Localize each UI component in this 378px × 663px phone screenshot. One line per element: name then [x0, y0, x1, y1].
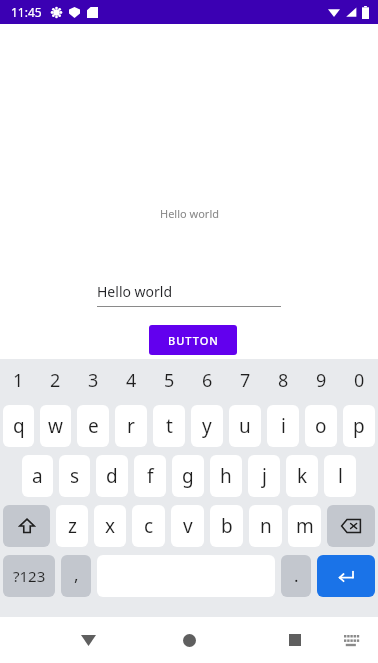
- button[interactable]: Recents: [281, 626, 309, 654]
- staticText: g: [182, 463, 194, 489]
- staticText: u: [239, 413, 251, 439]
- staticText: 5: [164, 368, 175, 393]
- staticText: 11:45: [11, 4, 42, 20]
- staticText: 6: [202, 368, 213, 393]
- staticText: s: [70, 463, 80, 489]
- button[interactable]: l: [324, 455, 356, 497]
- staticText: q: [13, 413, 25, 439]
- button[interactable]: m: [288, 505, 321, 547]
- button[interactable]: BUTTON: [149, 325, 237, 355]
- staticText: l: [338, 463, 343, 489]
- staticText: h: [220, 463, 232, 489]
- staticText: t: [166, 413, 173, 439]
- button[interactable]: 8: [264, 359, 302, 401]
- button[interactable]: Back: [74, 626, 102, 654]
- button[interactable]: g: [172, 455, 204, 497]
- staticText: e: [88, 413, 99, 439]
- button[interactable]: 7: [226, 359, 264, 401]
- button[interactable]: .: [281, 555, 311, 597]
- button[interactable]: b: [210, 505, 243, 547]
- button[interactable]: 0: [340, 359, 378, 401]
- staticText: 8: [278, 368, 289, 393]
- button[interactable]: i: [267, 405, 299, 447]
- button[interactable]: Home: [175, 626, 203, 654]
- staticText: n: [260, 513, 272, 539]
- button[interactable]: d: [96, 455, 128, 497]
- staticText: 1: [13, 368, 24, 393]
- staticText: m: [296, 513, 314, 539]
- button[interactable]: 2: [37, 359, 74, 401]
- button[interactable]: Shift: [3, 505, 50, 547]
- button[interactable]: ?123: [3, 555, 55, 597]
- button[interactable]: Switch keyboard: [339, 627, 365, 653]
- button[interactable]: s: [59, 455, 90, 497]
- button[interactable]: u: [229, 405, 261, 447]
- staticText: c: [144, 513, 154, 539]
- staticText: y: [202, 413, 212, 439]
- staticText: w: [48, 413, 63, 439]
- staticText: i: [281, 413, 286, 439]
- staticText: BUTTON: [168, 333, 219, 348]
- button[interactable]: 4: [112, 359, 150, 401]
- staticText: 7: [240, 368, 251, 393]
- staticText: Hello world: [97, 282, 173, 301]
- staticText: d: [106, 463, 118, 489]
- staticText: 0: [354, 368, 365, 393]
- button[interactable]: a: [22, 455, 53, 497]
- button[interactable]: h: [210, 455, 242, 497]
- button[interactable]: o: [305, 405, 337, 447]
- staticText: 9: [316, 368, 327, 393]
- button[interactable]: k: [286, 455, 318, 497]
- staticText: ,: [74, 563, 79, 586]
- staticText: a: [32, 463, 43, 489]
- button[interactable]: t: [153, 405, 185, 447]
- staticText: j: [262, 463, 267, 489]
- staticText: p: [353, 413, 365, 439]
- staticText: ?123: [13, 566, 46, 586]
- button[interactable]: v: [171, 505, 204, 547]
- staticText: o: [315, 413, 327, 439]
- staticText: b: [221, 513, 233, 539]
- button[interactable]: n: [249, 505, 282, 547]
- staticText: 3: [88, 368, 99, 393]
- button[interactable]: 1: [0, 359, 37, 401]
- button[interactable]: 3: [74, 359, 112, 401]
- button[interactable]: r: [115, 405, 147, 447]
- staticText: 4: [126, 368, 137, 393]
- staticText: v: [183, 513, 193, 539]
- button[interactable]: Backspace: [327, 505, 375, 547]
- button[interactable]: 6: [188, 359, 226, 401]
- button[interactable]: e: [77, 405, 109, 447]
- button[interactable]: y: [191, 405, 223, 447]
- button[interactable]: ,: [61, 555, 91, 597]
- staticText: Hello world: [160, 206, 219, 221]
- staticText: x: [105, 513, 116, 539]
- staticText: k: [297, 463, 308, 489]
- button[interactable]: p: [343, 405, 375, 447]
- button[interactable]: 5: [150, 359, 188, 401]
- button[interactable]: Enter: [317, 555, 375, 597]
- button[interactable]: w: [40, 405, 71, 447]
- staticText: r: [127, 413, 135, 439]
- button[interactable]: f: [134, 455, 166, 497]
- button[interactable]: z: [56, 505, 88, 547]
- button[interactable]: Hello world: [97, 282, 281, 307]
- button[interactable]: q: [3, 405, 34, 447]
- staticText: z: [68, 513, 77, 539]
- button[interactable]: 9: [302, 359, 340, 401]
- button[interactable]: x: [94, 505, 126, 547]
- staticText: 2: [50, 368, 61, 393]
- staticText: .: [294, 564, 299, 587]
- button[interactable]: j: [248, 455, 280, 497]
- button[interactable]: c: [132, 505, 165, 547]
- staticText: f: [147, 463, 154, 489]
